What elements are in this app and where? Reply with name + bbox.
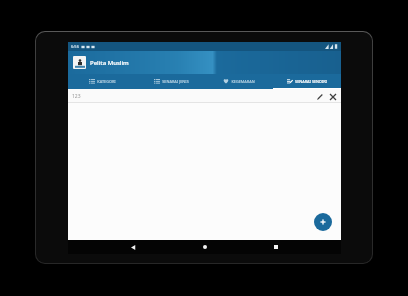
button[interactable]: Edit [314, 91, 325, 102]
button[interactable]: Close [327, 91, 338, 102]
button[interactable]: KEGEMARAN [205, 74, 273, 88]
button[interactable]: KATEGORI [68, 74, 137, 88]
staticText: 6:56 [71, 44, 79, 49]
button[interactable]: SENARAI SENDIRI [273, 74, 341, 88]
button[interactable]: Add [314, 213, 332, 231]
staticText: SENARAI SENDIRI [295, 79, 327, 84]
staticText: SENARAI JENIS [162, 79, 189, 84]
staticText: KATEGORI [97, 79, 116, 84]
button[interactable]: Recents [269, 240, 283, 254]
button[interactable]: Back [126, 240, 140, 254]
staticText: 123 [72, 93, 81, 100]
staticText: KEGEMARAN [231, 79, 255, 84]
button[interactable]: Home [198, 240, 212, 254]
button[interactable]: SENARAI JENIS [137, 74, 205, 88]
staticText: Pelita Muslim [90, 59, 129, 67]
